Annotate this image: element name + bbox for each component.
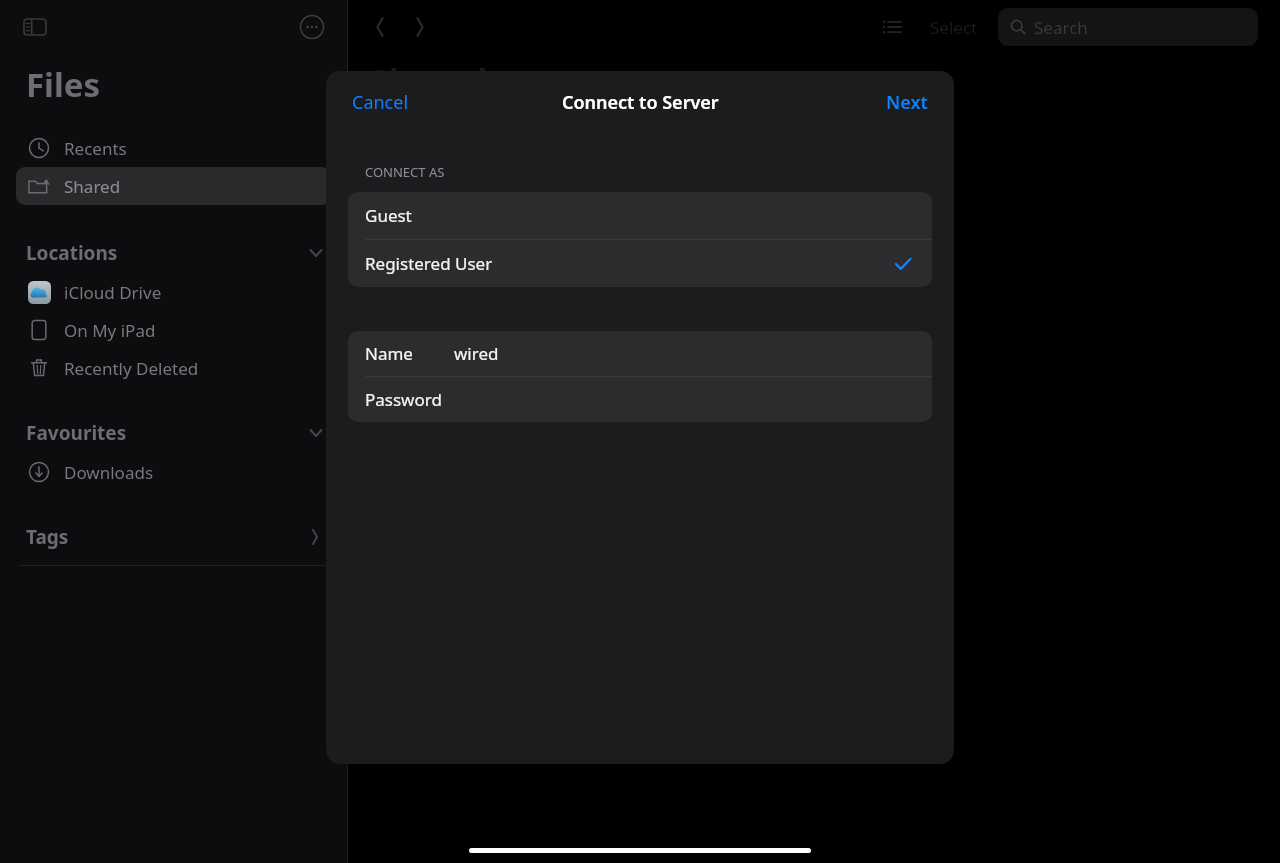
button[interactable]: Tags — [0, 517, 347, 557]
button[interactable]: Toggle sidebar — [18, 10, 52, 44]
staticText: wired — [454, 342, 499, 365]
button[interactable]: View options — [872, 7, 912, 47]
staticText: Registered User — [365, 252, 493, 275]
staticText: Next — [886, 90, 928, 115]
staticText: Search — [1034, 16, 1088, 39]
button[interactable]: Select — [926, 16, 982, 39]
button[interactable]: Guest — [348, 192, 932, 239]
staticText: Favourites — [26, 420, 127, 446]
staticText: Connect to Server — [562, 90, 719, 115]
button[interactable]: Registered User — [348, 240, 932, 287]
staticText: Tags — [26, 524, 69, 550]
button[interactable]: Back — [360, 7, 400, 47]
staticText: Guest — [365, 204, 412, 227]
staticText: Files — [26, 62, 101, 107]
button[interactable]: Name — [348, 331, 932, 376]
button[interactable]: Recents — [16, 129, 331, 167]
staticText: Locations — [26, 240, 118, 266]
button[interactable]: Forward — [400, 7, 440, 47]
button[interactable]: Cancel — [348, 84, 413, 121]
button[interactable]: Next — [882, 84, 932, 121]
staticText: Recents — [64, 137, 127, 160]
button[interactable]: Shared — [16, 167, 331, 205]
button[interactable]: Recently Deleted — [16, 349, 331, 387]
staticText: iCloud Drive — [64, 281, 162, 304]
button[interactable]: Favourites — [0, 413, 347, 453]
staticText: Cancel — [352, 90, 409, 115]
staticText: Select — [930, 16, 978, 39]
button[interactable]: On My iPad — [16, 311, 331, 349]
button[interactable]: Password — [348, 377, 932, 422]
button[interactable]: Downloads — [16, 453, 331, 491]
staticText: CONNECT AS — [365, 163, 445, 181]
staticText: Shared — [370, 58, 488, 104]
staticText: Name — [365, 342, 413, 365]
button[interactable]: iCloud Drive — [16, 273, 331, 311]
staticText: On My iPad — [64, 319, 156, 342]
staticText: Shared — [64, 175, 121, 198]
staticText: Recently Deleted — [64, 357, 199, 380]
button[interactable]: Locations — [0, 233, 347, 273]
staticText: Password — [365, 388, 442, 411]
button[interactable]: Search — [998, 8, 1258, 46]
button[interactable]: More — [295, 10, 329, 44]
staticText: Downloads — [64, 461, 154, 484]
